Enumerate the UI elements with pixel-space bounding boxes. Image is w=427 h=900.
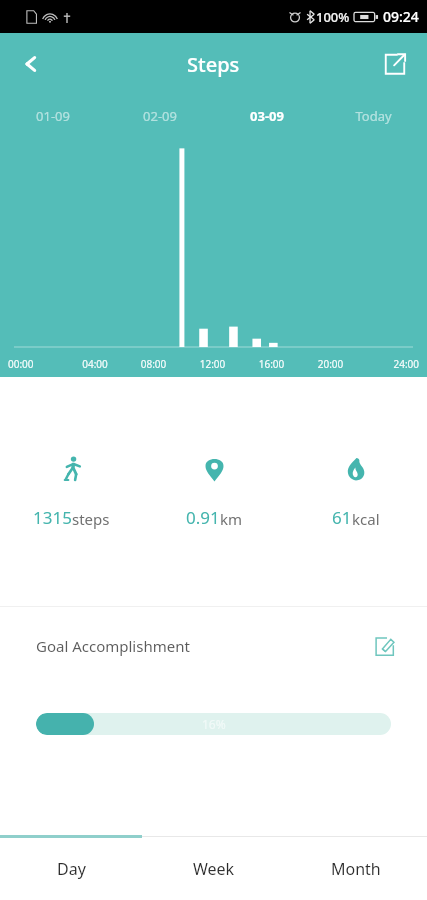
staticText: 02-09 bbox=[143, 107, 177, 125]
button[interactable]: Day bbox=[0, 838, 143, 900]
staticText: 16% bbox=[202, 716, 226, 732]
staticText: steps bbox=[72, 509, 110, 529]
staticText: 24:00 bbox=[360, 357, 419, 371]
button[interactable]: Month bbox=[285, 838, 427, 900]
button[interactable]: 02-09 bbox=[106, 95, 213, 137]
staticText: 20:00 bbox=[301, 357, 360, 371]
button[interactable]: 0.91 bbox=[143, 377, 285, 605]
staticText: Today bbox=[355, 107, 392, 125]
staticText: Month bbox=[331, 858, 381, 880]
staticText: kcal bbox=[352, 509, 380, 529]
button[interactable]: 03-09 bbox=[213, 95, 320, 137]
button[interactable]: 01-09 bbox=[0, 95, 106, 137]
staticText: Goal Accomplishment bbox=[36, 636, 190, 656]
staticText: 03-09 bbox=[250, 107, 284, 125]
staticText: Week bbox=[193, 858, 235, 880]
staticText: Steps bbox=[187, 51, 240, 78]
staticText: 08:00 bbox=[124, 357, 183, 371]
staticText: 01-09 bbox=[36, 107, 70, 125]
button[interactable]: Edit goal bbox=[365, 627, 403, 665]
button[interactable]: 16% bbox=[36, 713, 391, 735]
button[interactable]: 61 bbox=[285, 377, 427, 605]
button[interactable]: Week bbox=[143, 838, 285, 900]
staticText: 09:24 bbox=[383, 7, 419, 26]
staticText: 16:00 bbox=[242, 357, 301, 371]
staticText: 00:00 bbox=[8, 357, 66, 371]
staticText: 04:00 bbox=[66, 357, 124, 371]
staticText: 1315 bbox=[33, 506, 72, 529]
staticText: km bbox=[220, 509, 243, 529]
button[interactable]: Share bbox=[373, 42, 417, 86]
staticText: Day bbox=[57, 858, 86, 880]
button[interactable]: 1315 bbox=[0, 377, 143, 605]
staticText: 61 bbox=[332, 506, 352, 529]
staticText: 100% bbox=[316, 8, 350, 26]
button[interactable]: Back bbox=[8, 41, 54, 87]
staticText: 12:00 bbox=[183, 357, 242, 371]
staticText: 0.91 bbox=[186, 506, 220, 529]
button[interactable]: Today bbox=[320, 95, 427, 137]
